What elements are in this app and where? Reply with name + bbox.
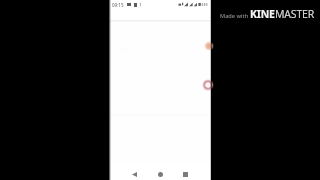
button[interactable]: Back: [128, 168, 140, 180]
button[interactable]: Recent apps: [179, 168, 191, 180]
button[interactable]: Record: [202, 79, 214, 91]
staticText: Made with: [220, 12, 250, 20]
button[interactable]: Action: [204, 41, 214, 51]
staticText: MASTER: [275, 7, 315, 21]
staticText: KINE: [250, 7, 275, 21]
staticText: 09:15: [112, 2, 124, 8]
button[interactable]: Home: [154, 168, 166, 180]
